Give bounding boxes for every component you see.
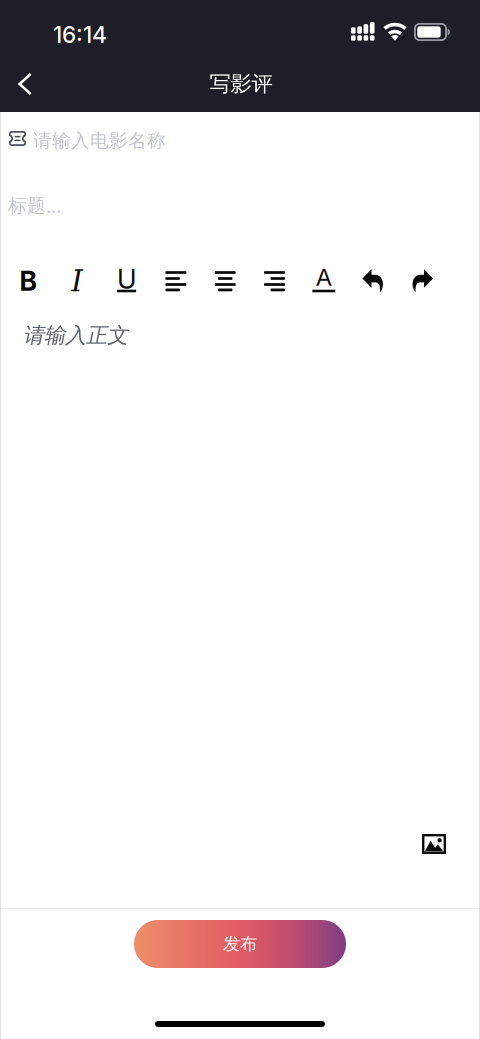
- button[interactable]: 标题...: [0, 168, 480, 240]
- staticText: A: [316, 262, 332, 291]
- staticText: 请输入电影名称: [33, 129, 166, 152]
- button[interactable]: [250, 240, 299, 322]
- staticText: 16:14: [53, 21, 107, 48]
- button[interactable]: 发布: [134, 920, 346, 968]
- staticText: 写影评: [209, 71, 272, 97]
- button[interactable]: Insert image: [413, 825, 455, 863]
- staticText: 发布: [223, 933, 257, 955]
- staticText: U: [117, 263, 136, 295]
- button[interactable]: U: [102, 240, 151, 322]
- staticText: B: [19, 265, 36, 297]
- button[interactable]: [348, 240, 398, 322]
- button[interactable]: A: [299, 240, 348, 322]
- button[interactable]: B: [3, 240, 53, 322]
- staticText: 标题...: [8, 194, 61, 217]
- button[interactable]: Back: [0, 56, 52, 112]
- button[interactable]: I: [53, 240, 102, 322]
- staticText: 请输入正文: [23, 322, 128, 349]
- button[interactable]: [200, 240, 250, 322]
- button[interactable]: 请输入电影名称: [0, 112, 480, 168]
- button[interactable]: [398, 240, 447, 322]
- staticText: I: [71, 264, 83, 298]
- button[interactable]: [151, 240, 200, 322]
